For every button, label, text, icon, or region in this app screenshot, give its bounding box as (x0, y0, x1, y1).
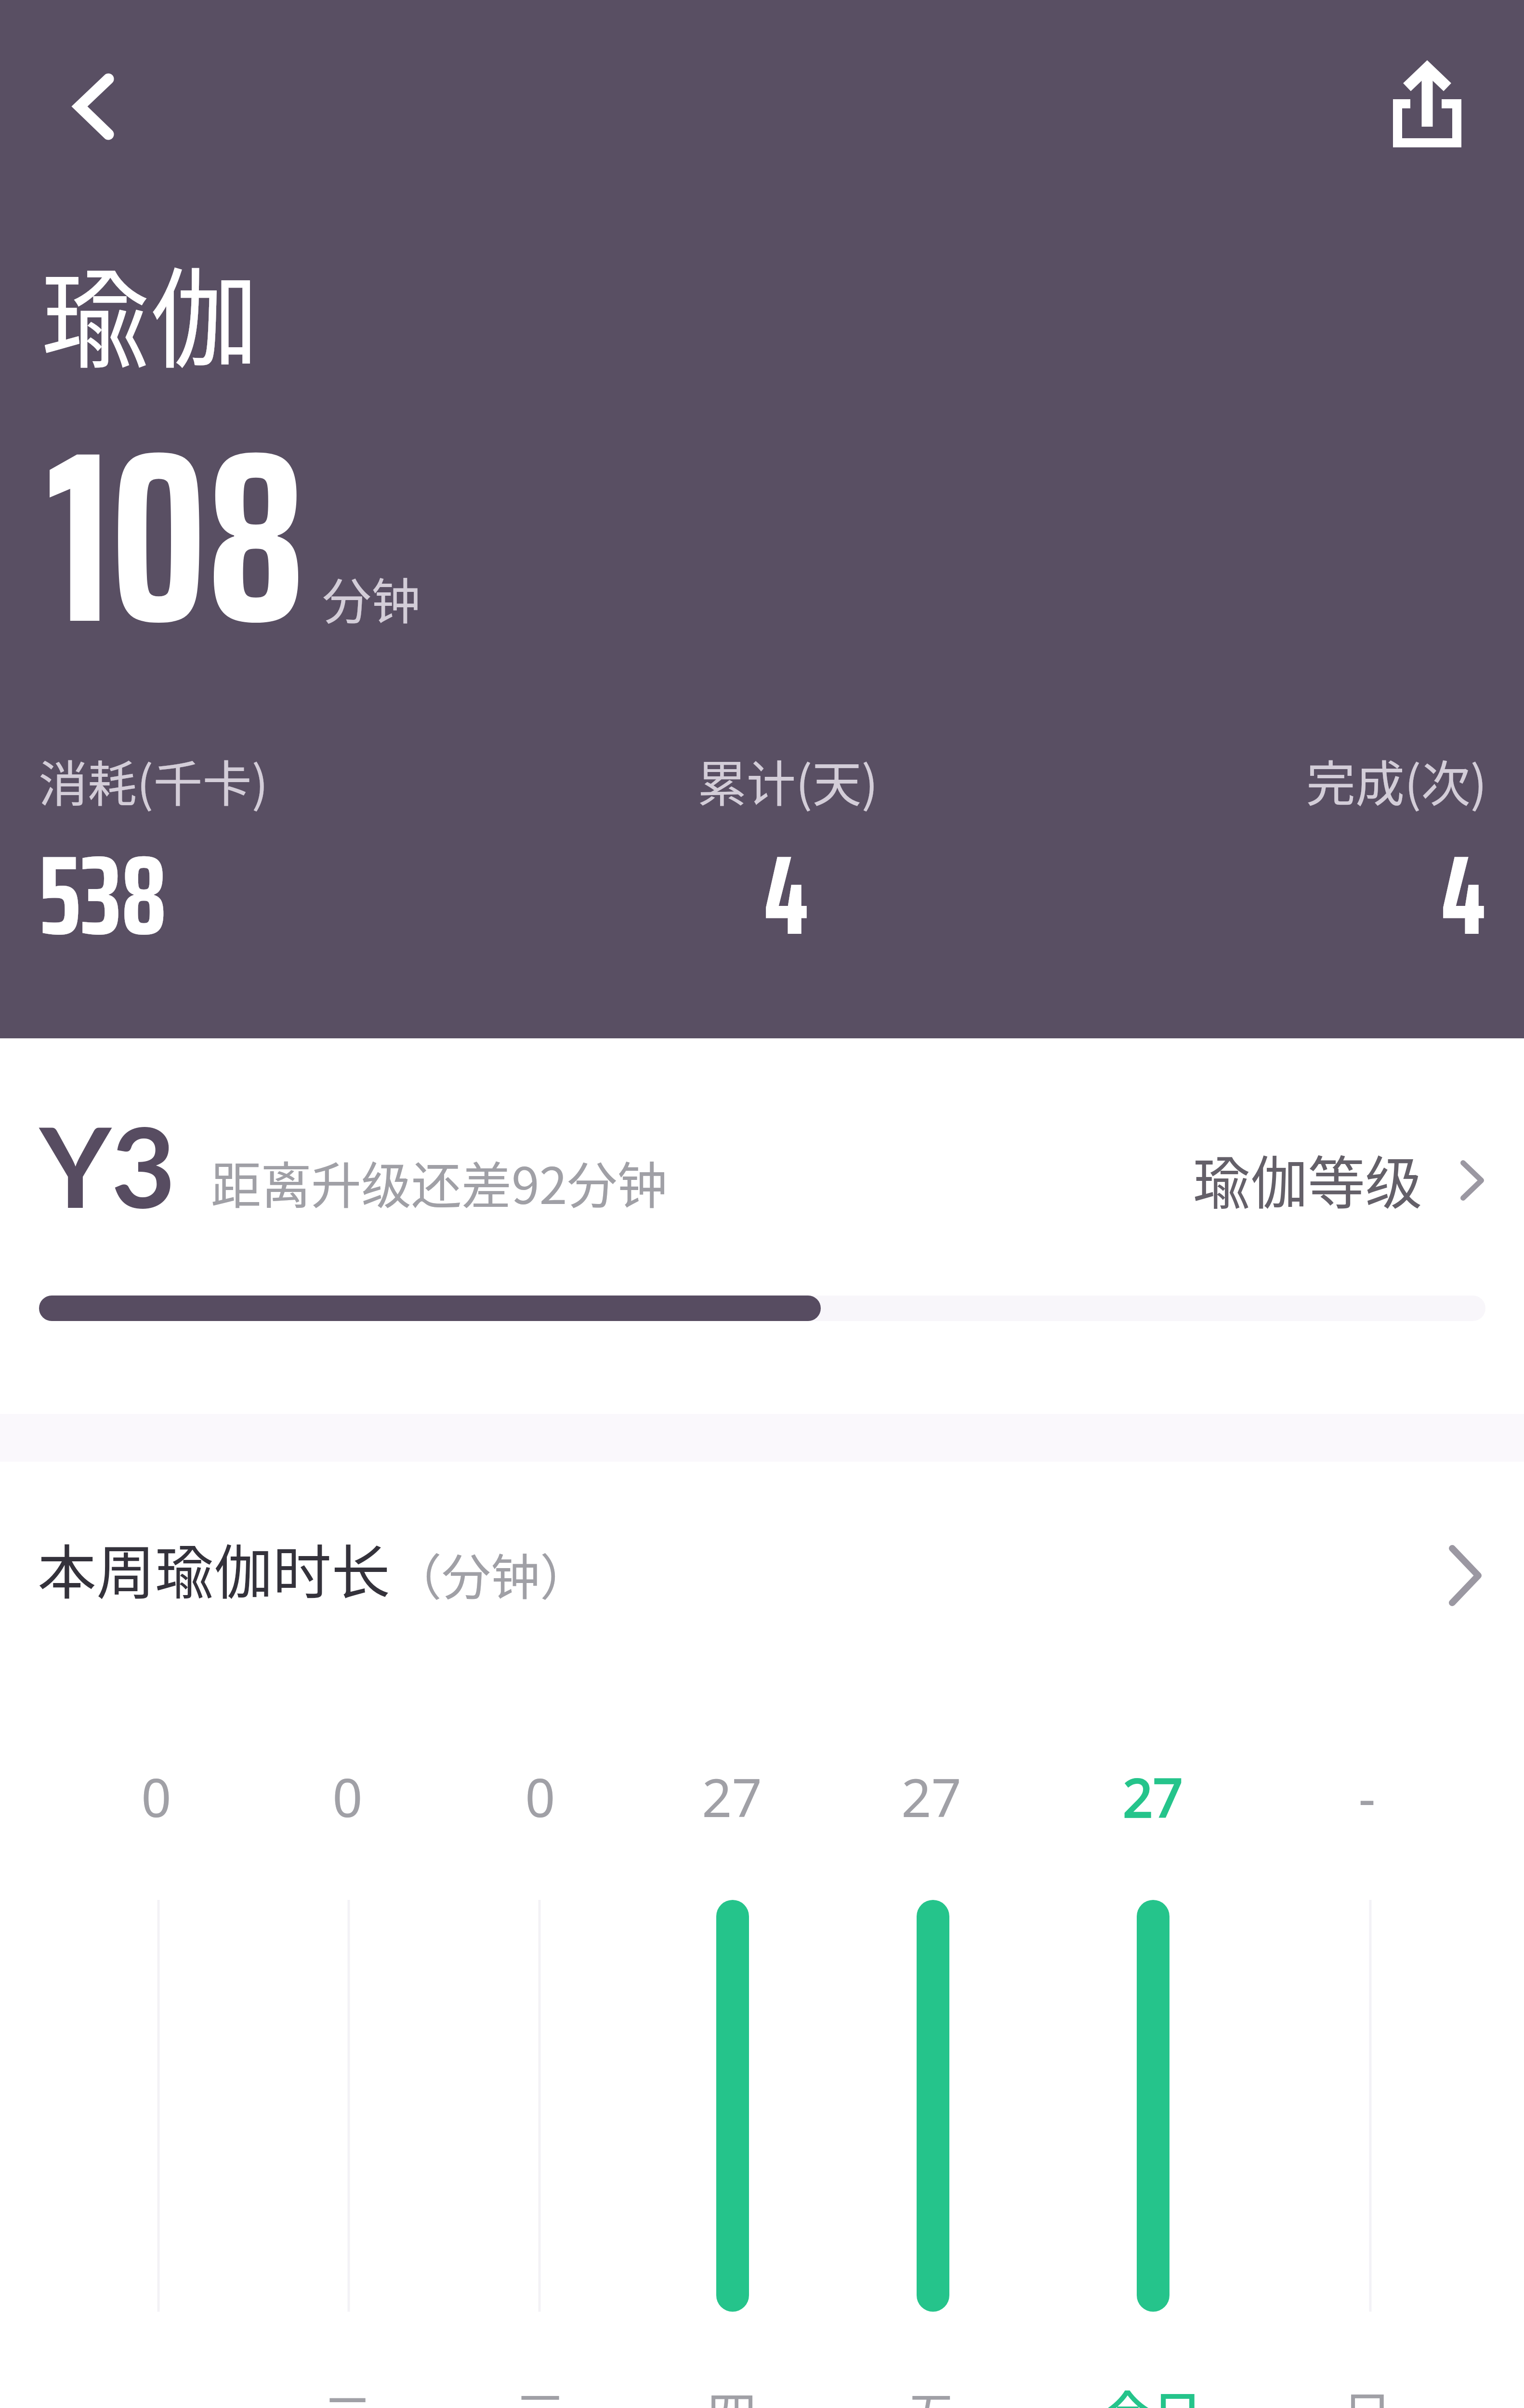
button[interactable]: Y3 (0, 1067, 1524, 1284)
staticText: （分钟） (393, 1538, 589, 1610)
staticText: 0 (332, 1761, 363, 1832)
staticText: 4 (764, 807, 808, 983)
staticText: 完成(次) (1306, 745, 1487, 816)
staticText: 日 (1342, 2376, 1392, 2408)
button[interactable]: Share (1374, 47, 1481, 172)
staticText: 二 (323, 2376, 372, 2408)
staticText: - (1358, 1761, 1376, 1832)
staticText: 538 (39, 807, 167, 983)
staticText: 四 (707, 2376, 757, 2408)
staticText: 4 (1441, 807, 1485, 983)
button[interactable]: 本周瑜伽时长 (0, 1462, 1524, 2408)
staticText: 三 (515, 2376, 565, 2408)
staticText: 五 (907, 2376, 956, 2408)
other: Week detail (1420, 1516, 1511, 1635)
staticText: 0 (141, 1761, 171, 1832)
staticText: 27 (702, 1761, 762, 1832)
other: Yoga level (1432, 1131, 1513, 1230)
staticText: 瑜伽等级 (1193, 1138, 1422, 1220)
staticText: 108 (46, 346, 305, 727)
staticText: 27 (901, 1761, 961, 1832)
staticText: 27 (1123, 1761, 1183, 1832)
staticText: 瑜伽 (41, 233, 258, 390)
staticText: 消耗(千卡) (39, 745, 268, 816)
staticText: 今日 (1103, 2376, 1202, 2408)
staticText: Y3 (39, 1099, 176, 1231)
staticText: 距离升级还差92分钟 (211, 1146, 668, 1218)
button[interactable]: Back (41, 43, 148, 169)
staticText: 累计(天) (697, 745, 878, 816)
staticText: 0 (525, 1761, 555, 1832)
staticText: 本周瑜伽时长 (38, 1525, 390, 1610)
staticText: 分钟 (322, 563, 420, 634)
